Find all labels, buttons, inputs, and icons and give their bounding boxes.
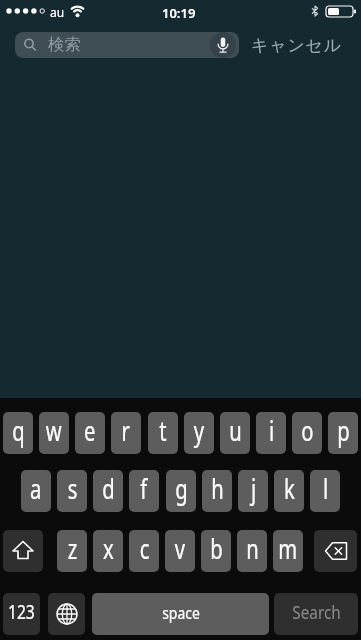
staticText: キャンセル [251, 35, 342, 56]
button[interactable]: キャンセル [247, 30, 351, 60]
button[interactable]: m [273, 530, 303, 572]
button[interactable]: r [111, 412, 141, 454]
staticText: h [211, 470, 224, 507]
button[interactable]: a [21, 470, 51, 512]
staticText: f [140, 470, 148, 507]
staticText: Search [292, 600, 341, 625]
button[interactable]: j [238, 470, 268, 512]
button[interactable]: s [57, 470, 87, 512]
staticText: l [323, 470, 328, 507]
button[interactable]: b [201, 530, 231, 572]
button[interactable]: i [256, 412, 286, 454]
button[interactable]: o [292, 412, 322, 454]
staticText: e [84, 412, 96, 449]
button[interactable]: x [93, 530, 123, 572]
staticText: o [301, 412, 314, 449]
staticText: 検索 [48, 34, 81, 55]
button[interactable]: z [57, 530, 87, 572]
staticText: n [246, 530, 259, 567]
staticText: k [284, 470, 295, 507]
button[interactable]: t [148, 412, 178, 454]
staticText: c [140, 530, 149, 567]
staticText: w [46, 412, 62, 449]
button[interactable]: g [166, 470, 196, 512]
button[interactable]: q [3, 412, 33, 454]
staticText: q [12, 412, 25, 449]
staticText: x [103, 530, 114, 567]
button[interactable] [48, 593, 85, 635]
button[interactable]: c [129, 530, 159, 572]
button[interactable]: n [237, 530, 267, 572]
button[interactable]: w [39, 412, 69, 454]
staticText: z [68, 530, 77, 567]
staticText: m [278, 530, 298, 567]
button[interactable]: u [220, 412, 250, 454]
staticText: j [251, 470, 256, 507]
staticText: 10:19 [162, 4, 196, 22]
button[interactable]: f [129, 470, 159, 512]
staticText: s [68, 470, 77, 507]
staticText: space [162, 601, 200, 624]
button[interactable] [3, 530, 43, 572]
button[interactable]: 123 [3, 593, 40, 635]
staticText: u [229, 412, 242, 449]
button[interactable]: k [274, 470, 304, 512]
staticText: d [102, 470, 115, 507]
button[interactable]: e [75, 412, 105, 454]
button[interactable]: space [92, 593, 269, 635]
staticText: au [50, 4, 65, 20]
button[interactable]: d [93, 470, 123, 512]
staticText: 123 [8, 599, 35, 625]
staticText: t [159, 412, 167, 449]
staticText: b [210, 530, 223, 567]
button[interactable] [15, 32, 239, 58]
button[interactable]: Search [274, 593, 358, 635]
button[interactable]: l [310, 470, 340, 512]
staticText: a [30, 470, 42, 507]
staticText: i [269, 412, 274, 449]
staticText: g [175, 470, 188, 507]
staticText: y [194, 412, 204, 449]
staticText: v [175, 530, 185, 567]
button[interactable] [314, 530, 357, 572]
staticText: r [121, 412, 130, 449]
button[interactable]: y [184, 412, 214, 454]
button[interactable]: h [202, 470, 232, 512]
staticText: p [337, 412, 350, 449]
button[interactable]: v [165, 530, 195, 572]
button[interactable]: p [328, 412, 358, 454]
